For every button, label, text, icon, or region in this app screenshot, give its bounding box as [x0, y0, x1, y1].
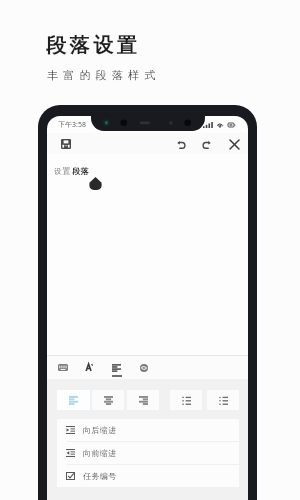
button[interactable]: Redo: [199, 136, 215, 152]
button[interactable]: Save: [58, 136, 74, 152]
button[interactable]: 向前缩进: [57, 442, 239, 464]
button[interactable]: Align right: [127, 390, 159, 410]
button[interactable]: Paragraph: [103, 356, 130, 379]
staticText: 任务编号: [83, 471, 117, 481]
button[interactable]: 任务编号: [57, 465, 239, 487]
button[interactable]: Font style: [76, 356, 103, 379]
staticText: 设置: [54, 166, 72, 176]
button[interactable]: Align center: [92, 390, 124, 410]
button[interactable]: Bullet list: [207, 390, 239, 410]
button[interactable]: Undo: [173, 136, 189, 152]
button[interactable]: Keyboard: [49, 356, 76, 379]
button[interactable]: Align left: [57, 390, 90, 410]
staticText: 向前缩进: [83, 448, 117, 458]
staticText: 丰富的段落样式: [47, 68, 161, 82]
staticText: 向后缩进: [83, 425, 117, 435]
staticText: 段落: [72, 166, 90, 176]
button[interactable]: Numbered list: [170, 390, 202, 410]
button[interactable]: Close: [226, 136, 242, 152]
staticText: 下午3:58: [58, 120, 86, 130]
staticText: 段落设置: [46, 33, 141, 58]
button[interactable]: Insert: [130, 356, 157, 379]
button[interactable]: 向后缩进: [57, 419, 239, 441]
